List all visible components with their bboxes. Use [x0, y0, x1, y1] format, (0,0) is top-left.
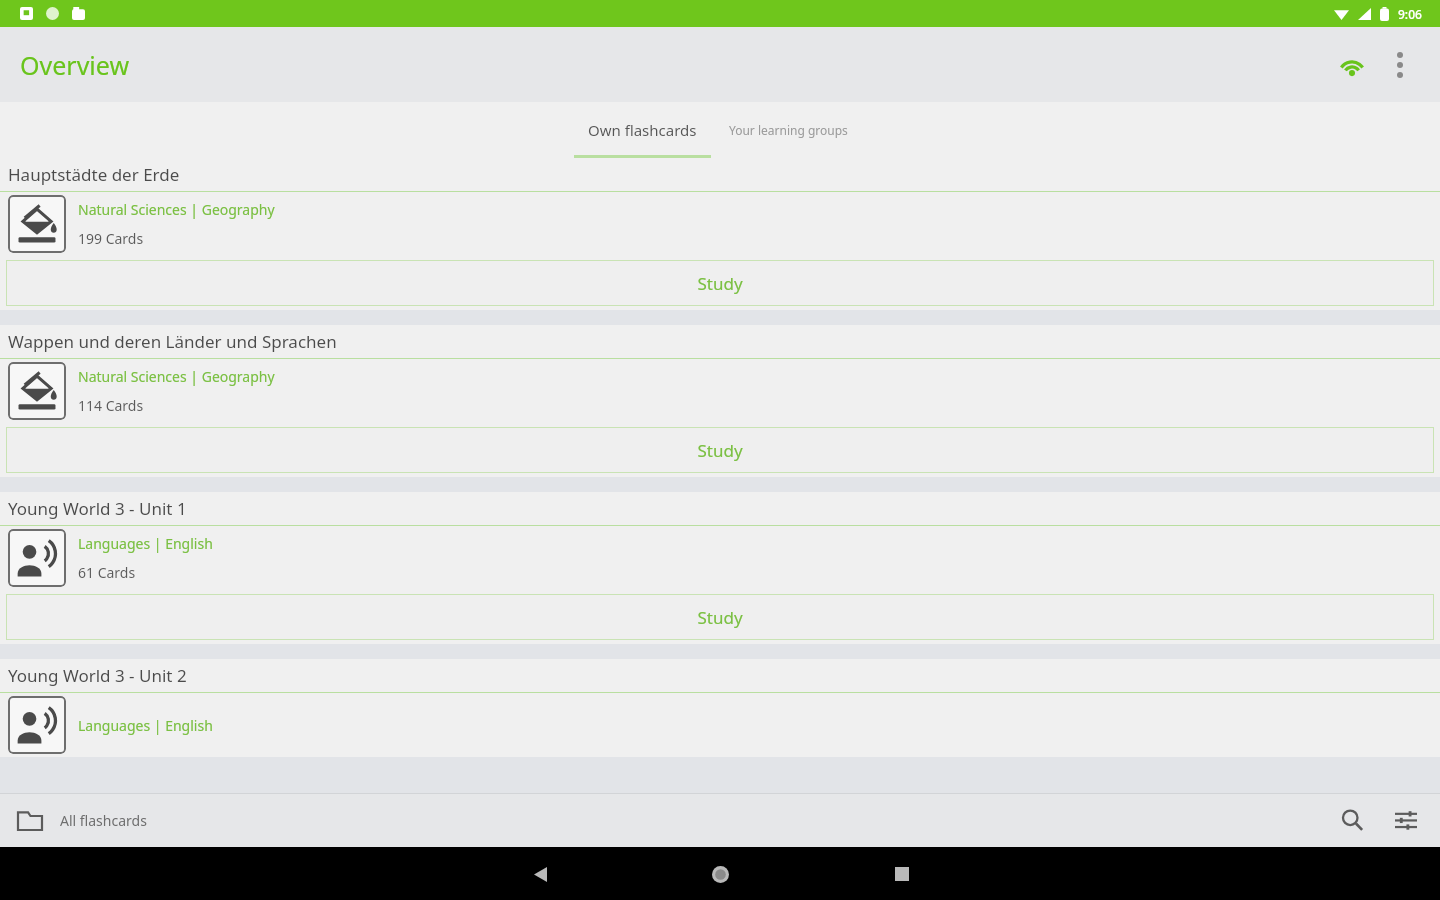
staticText: 199 Cards [78, 229, 144, 248]
staticText: Natural Sciences | Geography [78, 200, 275, 219]
button[interactable]: Recent apps [884, 856, 920, 892]
staticText: Own flashcards [588, 120, 697, 140]
staticText: 61 Cards [78, 563, 136, 582]
button[interactable]: Own flashcards [574, 102, 711, 158]
staticText: Hauptstädte der Erde [8, 163, 180, 186]
staticText: Languages | English [78, 534, 213, 553]
button[interactable]: Your learning groups [711, 102, 866, 158]
button[interactable]: Study [6, 427, 1434, 473]
staticText: Languages | English [78, 716, 213, 735]
staticText: Your learning groups [729, 122, 848, 138]
button[interactable]: Study [6, 260, 1434, 306]
staticText: 9:06 [1398, 6, 1422, 22]
staticText: Young World 3 - Unit 2 [8, 664, 187, 687]
staticText: Natural Sciences | Geography [78, 367, 275, 386]
button[interactable]: All flashcards [10, 800, 147, 840]
button[interactable]: Home [702, 856, 738, 892]
button[interactable]: Young World 3 - Unit 1 [0, 492, 1440, 644]
staticText: Study [697, 439, 743, 462]
button[interactable]: Hauptstädte der Erde [0, 158, 1440, 310]
button[interactable]: Study [6, 594, 1434, 640]
button[interactable]: More options [1376, 41, 1424, 89]
button[interactable]: Back [522, 856, 558, 892]
staticText: Study [697, 272, 743, 295]
staticText: 114 Cards [78, 396, 144, 415]
staticText: Study [697, 606, 743, 629]
staticText: Overview [20, 48, 130, 82]
button[interactable]: Wi-Fi sync [1328, 41, 1376, 89]
staticText: Wappen und deren Länder und Sprachen [8, 330, 337, 353]
staticText: All flashcards [60, 811, 147, 830]
staticText: Young World 3 - Unit 1 [8, 497, 187, 520]
button[interactable]: Young World 3 - Unit 2 [0, 659, 1440, 757]
button[interactable]: Search [1330, 798, 1374, 842]
button[interactable]: Filter [1384, 798, 1428, 842]
button[interactable]: Wappen und deren Länder und Sprachen [0, 325, 1440, 477]
